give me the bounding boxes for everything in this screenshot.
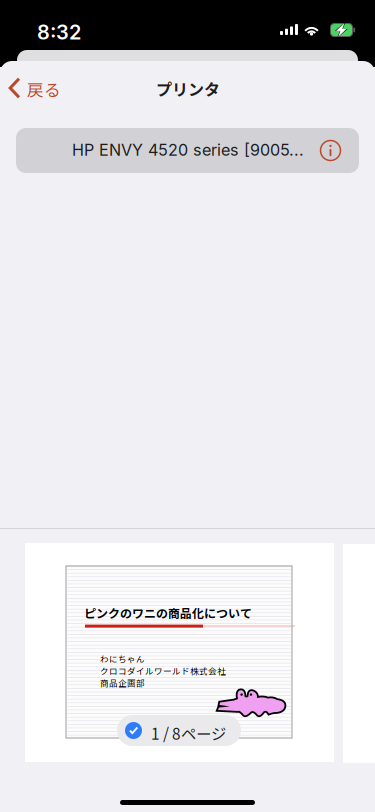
staticText: プリンタ — [156, 77, 220, 100]
button[interactable]: HP ENVY 4520 series [9005... — [16, 128, 359, 173]
staticText: 8:32 — [37, 20, 81, 44]
staticText: クロコダイルワールド株式会社 — [100, 664, 226, 677]
staticText: 1 / 8ページ — [151, 722, 226, 744]
staticText: わにちゃん — [100, 652, 145, 665]
staticText: 戻る — [27, 77, 61, 101]
button[interactable]: 戻る — [0, 69, 62, 109]
staticText: 商品企画部 — [100, 676, 145, 689]
staticText: ピンクのワニの商品化について — [84, 604, 252, 621]
staticText: HP ENVY 4520 series [9005... — [72, 140, 304, 159]
